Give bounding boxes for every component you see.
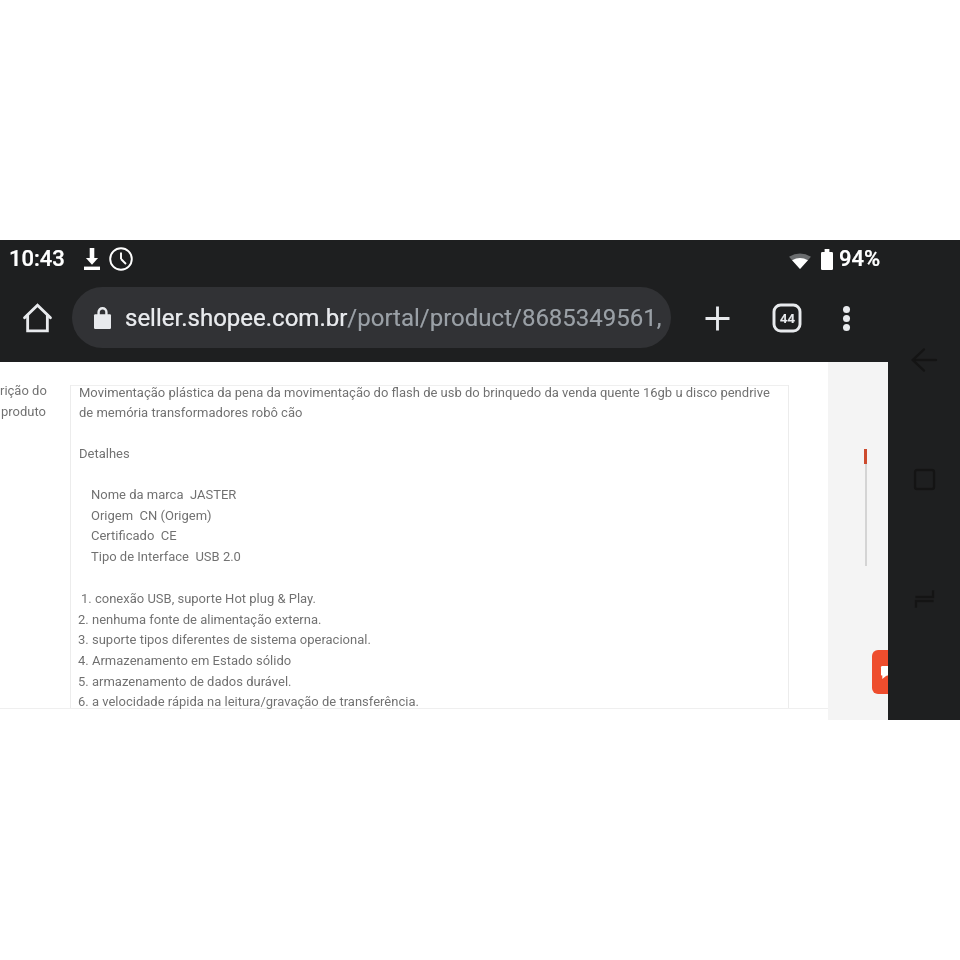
staticText: 44 [780, 311, 795, 326]
staticText: 94% [839, 246, 881, 272]
button[interactable]: seller.shopee.com.br/portal/product/8685… [72, 287, 671, 348]
staticText: Detalhes [79, 446, 130, 461]
staticText: Origem CN (Origem) [91, 508, 212, 523]
staticText: 2. nenhuma fonte de alimentação externa. [78, 612, 322, 627]
button[interactable]: New tab [693, 294, 741, 342]
staticText: 6. a velocidade rápida na leitura/gravaç… [78, 694, 419, 709]
staticText: 5. armazenamento de dados durável. [78, 674, 292, 689]
staticText: rição do [0, 383, 47, 398]
staticText: Movimentação plástica da pena da movimen… [79, 385, 770, 400]
button[interactable]: Tabs [763, 294, 811, 342]
staticText: 10:43 [9, 246, 65, 272]
staticText: seller.shopee.com.br/portal/product/8685… [125, 304, 662, 332]
staticText: Tipo de Interface USB 2.0 [91, 549, 241, 564]
staticText: produto [1, 404, 47, 419]
staticText: 4. Armazenamento em Estado sólido [78, 653, 292, 668]
staticText: de memória transformadores robô cão [79, 405, 303, 420]
staticText: Certificado CE [91, 528, 177, 543]
staticText: 3. suporte tipos diferentes de sistema o… [78, 632, 371, 647]
staticText: 1. conexão USB, suporte Hot plug & Play. [81, 591, 316, 606]
staticText: Nome da marca JASTER [91, 487, 237, 502]
button[interactable]: Chat [872, 650, 916, 694]
button[interactable]: More options [822, 294, 870, 342]
button[interactable]: Home [13, 294, 61, 342]
